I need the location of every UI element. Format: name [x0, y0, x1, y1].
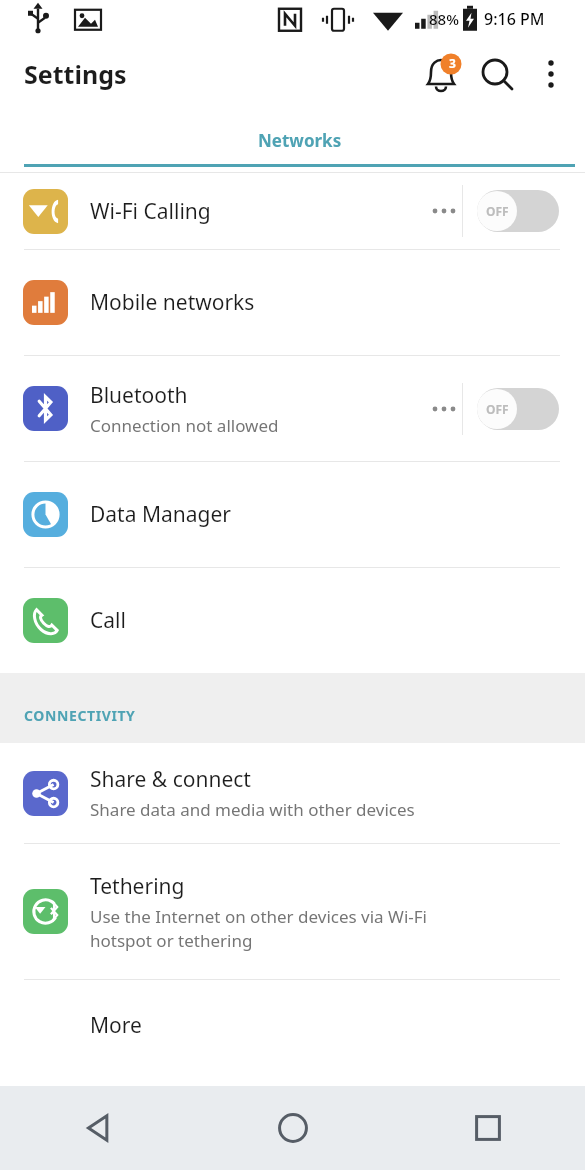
staticText: Connection not allowed [90, 414, 279, 437]
button[interactable]: Notifications [413, 46, 469, 102]
button[interactable]: Call [0, 568, 585, 673]
staticText: CONNECTIVITY [24, 706, 136, 725]
staticText: Mobile networks [90, 288, 255, 317]
button[interactable]: Tethering [0, 844, 585, 979]
button[interactable]: Search [469, 46, 525, 102]
staticText: 9:16 PM [484, 8, 545, 30]
staticText: Bluetooth [90, 381, 188, 410]
button[interactable]: Share & connect [0, 743, 585, 843]
staticText: Share & connect [90, 765, 251, 794]
staticText: OFF [486, 401, 509, 417]
staticText: Settings [24, 57, 127, 91]
button[interactable]: Bluetooth [0, 356, 585, 461]
staticText: OFF [486, 203, 509, 219]
button[interactable]: Wi-Fi Calling [0, 173, 585, 249]
button[interactable]: Home [195, 1086, 390, 1170]
button[interactable]: More settings [426, 386, 462, 432]
button[interactable]: More options [525, 48, 577, 100]
staticText: More [90, 1011, 142, 1040]
staticText: Data Manager [90, 500, 231, 529]
staticText: Call [90, 606, 126, 635]
button[interactable]: More settings [426, 188, 462, 234]
staticText: Tethering [90, 872, 185, 901]
button[interactable]: Recent apps [390, 1086, 585, 1170]
staticText: 88% [429, 9, 459, 29]
staticText: Use the Internet on other devices via Wi… [90, 905, 427, 952]
button[interactable]: Back [0, 1086, 195, 1170]
button[interactable]: Data Manager [0, 462, 585, 567]
button[interactable]: Networks [0, 110, 585, 172]
button[interactable]: More [0, 980, 585, 1070]
staticText: Share data and media with other devices [90, 798, 415, 821]
staticText: 3 [449, 55, 456, 71]
button[interactable]: Mobile networks [0, 250, 585, 355]
staticText: Networks [258, 129, 342, 152]
staticText: Wi-Fi Calling [90, 197, 211, 226]
button[interactable]: Toggle [477, 388, 559, 430]
button[interactable]: Toggle [477, 190, 559, 232]
